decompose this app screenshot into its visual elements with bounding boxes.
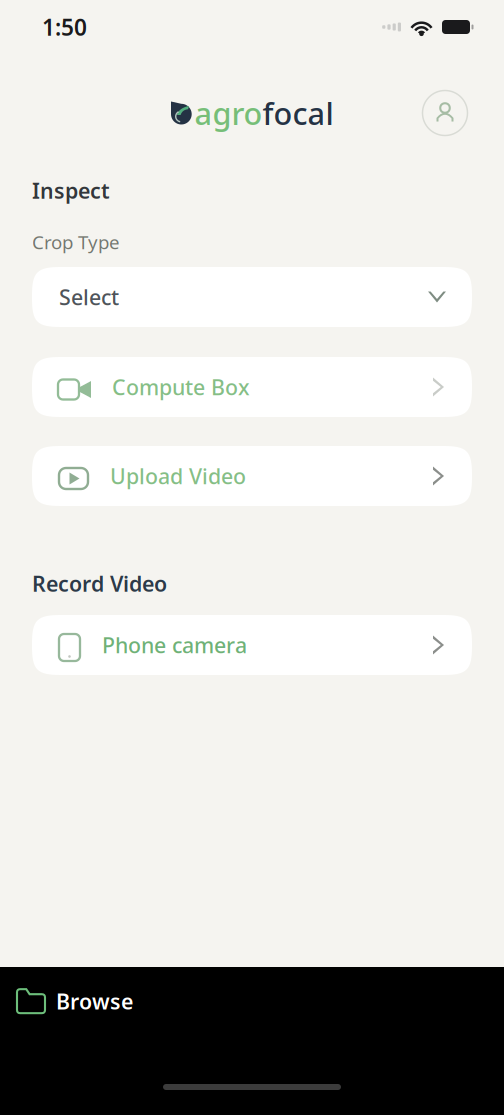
button[interactable]: Compute Box <box>32 357 472 417</box>
staticText: Compute Box <box>112 373 250 401</box>
staticText: focal <box>262 93 333 133</box>
staticText: Phone camera <box>102 631 247 659</box>
staticText: 1:50 <box>42 12 87 42</box>
button[interactable]: Upload Video <box>32 446 472 506</box>
staticText: Select <box>59 283 119 311</box>
staticText: Inspect <box>32 176 110 205</box>
button[interactable]: Select <box>32 267 472 327</box>
staticText: Crop Type <box>32 230 120 254</box>
button[interactable]: Phone camera <box>32 615 472 675</box>
staticText: Browse <box>56 987 133 1015</box>
button[interactable]: Browse <box>0 977 133 1025</box>
staticText: Record Video <box>32 569 167 598</box>
staticText: agro <box>194 93 262 133</box>
staticText: Upload Video <box>110 462 246 490</box>
button[interactable]: Profile <box>421 89 469 137</box>
